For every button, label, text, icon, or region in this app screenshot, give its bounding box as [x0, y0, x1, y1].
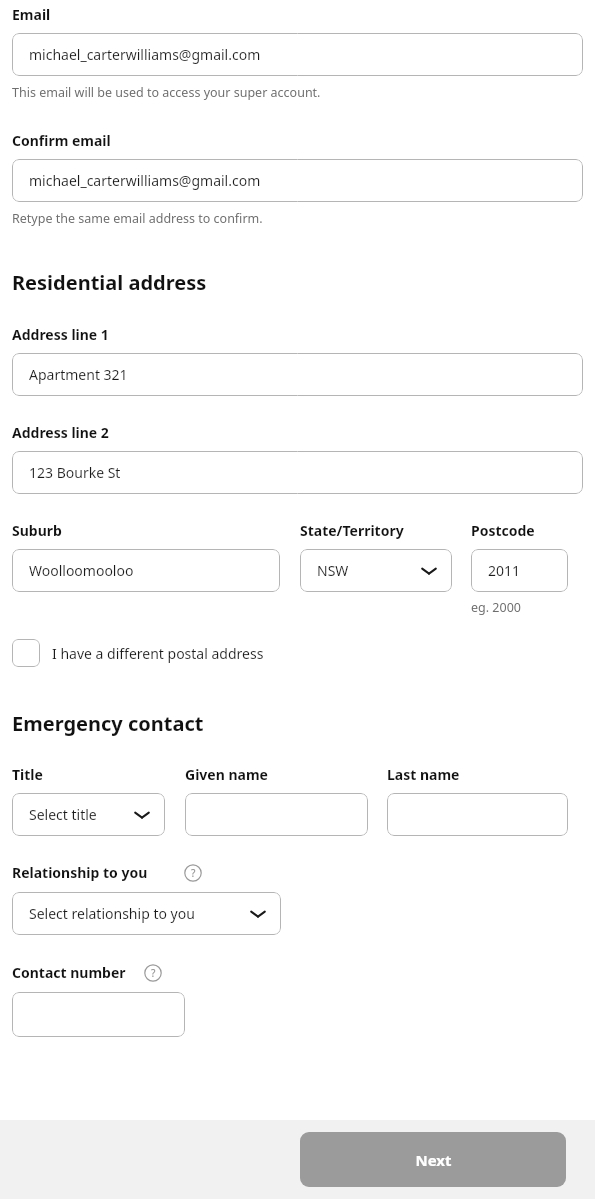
staticText: Title: [12, 765, 43, 784]
staticText: Woolloomooloo: [29, 561, 134, 580]
button[interactable]: 123 Bourke St: [12, 451, 583, 494]
staticText: Residential address: [12, 269, 207, 296]
button[interactable]: NSW: [300, 549, 452, 592]
staticText: This email will be used to access your s…: [12, 84, 321, 101]
button[interactable]: michael_carterwilliams@gmail.com: [12, 33, 583, 76]
button[interactable]: Help about contact number: [144, 964, 162, 982]
staticText: michael_carterwilliams@gmail.com: [29, 45, 261, 64]
button[interactable]: Woolloomooloo: [12, 549, 280, 592]
staticText: ?: [191, 866, 196, 880]
staticText: Address line 2: [12, 423, 109, 442]
staticText: Relationship to you: [12, 863, 148, 882]
staticText: Select relationship to you: [29, 904, 195, 923]
staticText: Given name: [185, 765, 268, 784]
staticText: Email: [12, 5, 51, 24]
staticText: eg. 2000: [471, 599, 521, 616]
staticText: Next: [415, 1150, 452, 1170]
button[interactable]: [185, 793, 368, 836]
button[interactable]: [387, 793, 568, 836]
button[interactable]: Select title: [12, 793, 165, 836]
button[interactable]: Help about relationship to you: [184, 864, 202, 882]
button[interactable]: 2011: [471, 549, 568, 592]
staticText: Retype the same email address to confirm…: [12, 210, 263, 227]
staticText: Apartment 321: [29, 365, 128, 384]
staticText: NSW: [317, 561, 349, 580]
button[interactable]: Next: [300, 1132, 566, 1187]
staticText: 2011: [488, 561, 521, 580]
staticText: State/Territory: [300, 521, 404, 540]
staticText: Suburb: [12, 521, 62, 540]
staticText: Contact number: [12, 963, 126, 982]
button[interactable]: Select relationship to you: [12, 892, 281, 935]
button[interactable]: Apartment 321: [12, 353, 583, 396]
staticText: Emergency contact: [12, 710, 204, 737]
staticText: Confirm email: [12, 131, 111, 150]
button[interactable]: [12, 992, 185, 1037]
button[interactable]: michael_carterwilliams@gmail.com: [12, 159, 583, 202]
staticText: Address line 1: [12, 325, 109, 344]
staticText: Last name: [387, 765, 460, 784]
staticText: 123 Bourke St: [29, 463, 121, 482]
staticText: Select title: [29, 805, 97, 824]
staticText: michael_carterwilliams@gmail.com: [29, 171, 261, 190]
staticText: I have a different postal address: [52, 644, 264, 663]
staticText: Postcode: [471, 521, 535, 540]
staticText: ?: [151, 966, 156, 980]
button[interactable]: I have a different postal address: [12, 639, 264, 667]
